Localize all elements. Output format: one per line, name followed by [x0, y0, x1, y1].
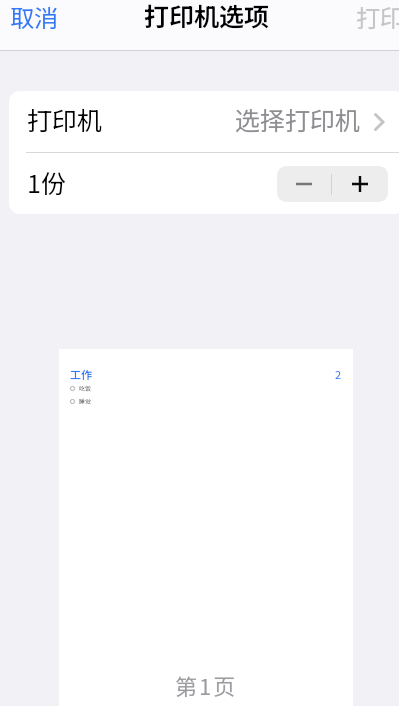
button[interactable]: Increase copies	[332, 166, 388, 202]
staticText: 打印机	[27, 101, 103, 137]
staticText: 吃饭	[79, 384, 92, 393]
button[interactable]: 打印机	[9, 91, 399, 152]
staticText: 打印	[356, 0, 399, 34]
button[interactable]: Decrease copies	[277, 166, 331, 202]
staticText: 1份	[27, 164, 66, 200]
button[interactable]: 打印	[346, 0, 399, 39]
other: Choose printer	[374, 113, 384, 131]
staticText: 工作	[70, 366, 92, 382]
button[interactable]: 取消	[0, 0, 68, 39]
button[interactable]: Page 1 preview	[59, 349, 353, 706]
staticText: 第1页	[175, 669, 237, 701]
staticText: 睡觉	[79, 397, 92, 406]
staticText: 打印机选项	[144, 0, 270, 33]
staticText: 取消	[10, 0, 58, 34]
staticText: 2	[335, 366, 342, 382]
staticText: 选择打印机	[235, 101, 361, 137]
